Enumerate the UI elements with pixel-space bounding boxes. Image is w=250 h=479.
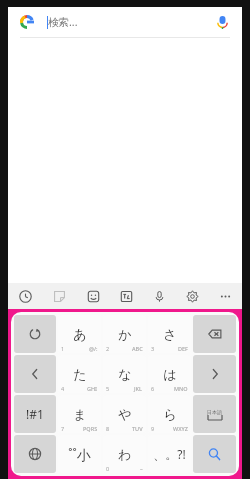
button[interactable]: Cursor left [14, 355, 56, 393]
staticText: 2 [106, 345, 110, 352]
button[interactable]: は [148, 355, 191, 393]
staticText: 検索... [48, 15, 78, 29]
staticText: さ [163, 326, 177, 342]
staticText: 5 [106, 385, 110, 392]
staticText: は [163, 366, 177, 382]
button[interactable]: な [103, 355, 146, 393]
button[interactable]: さ [148, 315, 191, 353]
staticText: !#1 [26, 406, 44, 422]
staticText: や [118, 406, 132, 422]
staticText: 4 [61, 385, 65, 392]
button[interactable]: Voice search [212, 12, 232, 32]
button[interactable]: Change language [14, 435, 56, 473]
button[interactable]: ˚˚小 [58, 435, 101, 473]
button[interactable]: あ [58, 315, 101, 353]
button[interactable]: Recent [8, 283, 42, 309]
button[interactable]: Google [18, 13, 36, 31]
button[interactable]: Search [193, 435, 236, 473]
staticText: WXYZ [173, 425, 188, 432]
staticText: た [73, 366, 87, 382]
staticText: か [118, 326, 132, 342]
button[interactable]: ら [148, 395, 191, 433]
button[interactable]: Space [193, 395, 236, 433]
staticText: MNO [174, 385, 188, 392]
staticText: TUV [132, 425, 143, 432]
button[interactable]: や [103, 395, 146, 433]
button[interactable]: た [58, 355, 101, 393]
staticText: ら [163, 406, 177, 422]
staticText: 8 [106, 425, 110, 432]
staticText: 0 [106, 465, 110, 472]
staticText: JKL [134, 385, 143, 392]
button[interactable]: Stickers [42, 283, 76, 309]
button[interactable]: わ [103, 435, 146, 473]
button[interactable]: か [103, 315, 146, 353]
staticText: DEF [178, 345, 188, 352]
staticText: 3 [151, 345, 155, 352]
staticText: 1 [61, 345, 65, 352]
button[interactable]: Translate [110, 283, 143, 309]
button[interactable]: Settings [176, 283, 209, 309]
button[interactable]: Cursor right [193, 355, 236, 393]
button[interactable]: More [209, 283, 242, 309]
button[interactable]: Voice input [143, 283, 176, 309]
staticText: GHI [87, 385, 98, 392]
button[interactable]: ま [58, 395, 101, 433]
staticText: ˚˚小 [68, 445, 91, 464]
button[interactable]: !#1 [14, 395, 56, 433]
button[interactable]: Backspace [193, 315, 236, 353]
staticText: – [140, 465, 143, 472]
staticText: 6 [151, 385, 155, 392]
staticText: あ [73, 326, 87, 342]
staticText: PQRS [83, 425, 98, 432]
button[interactable]: Undo [14, 315, 56, 353]
staticText: @/: [89, 345, 98, 352]
staticText: 日本語 [207, 409, 222, 415]
staticText: な [118, 366, 132, 382]
staticText: 7 [61, 425, 65, 432]
button[interactable]: Emoji [76, 283, 110, 309]
staticText: 、。?! [153, 446, 186, 462]
button[interactable]: 、。?! [148, 435, 191, 473]
staticText: わ [118, 446, 132, 462]
staticText: ABC [132, 345, 143, 352]
staticText: ま [73, 406, 87, 422]
staticText: 9 [151, 425, 155, 432]
